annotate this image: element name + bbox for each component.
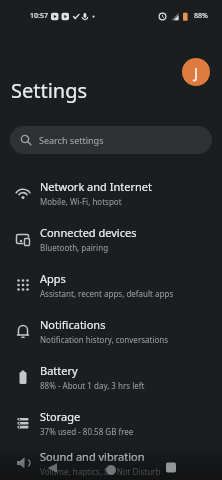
staticText: J [194,63,199,82]
staticText: Volume, haptics, Do Not Disturb [40,466,161,477]
staticText: Notifications [40,317,106,332]
button[interactable]: Search settings [10,126,212,154]
staticText: Apps [40,271,66,286]
staticText: Assistant, recent apps, default apps [40,288,174,299]
button[interactable] [148,456,222,480]
button[interactable]: Apps [0,262,222,308]
staticText: Bluetooth, pairing [40,242,109,253]
staticText: Sound and vibration [40,449,145,464]
staticText: Search settings [39,134,104,146]
button[interactable]: Battery [0,354,222,400]
staticText: Notification history, conversations [40,334,169,345]
staticText: Mobile, Wi-Fi, hotspot [40,196,122,207]
staticText: 88% - About 1 day, 3 hrs left [40,380,145,391]
staticText: 88% [194,11,208,21]
button[interactable]: Notifications [0,308,222,354]
button[interactable] [74,456,148,480]
button[interactable]: Storage [0,400,222,446]
button[interactable]: Sound and vibration [0,446,222,480]
staticText: Storage [40,409,81,424]
button[interactable]: Connected devices [0,216,222,262]
staticText: Network and Internet [40,179,152,194]
button[interactable]: J [182,58,210,86]
button[interactable] [0,456,74,480]
staticText: 10:57 [30,11,48,21]
staticText: Settings [11,77,88,104]
staticText: Connected devices [40,225,137,240]
button[interactable]: Network and Internet [0,170,222,216]
staticText: 37% used - 80.58 GB free [40,426,134,437]
staticText: Battery [40,363,78,378]
